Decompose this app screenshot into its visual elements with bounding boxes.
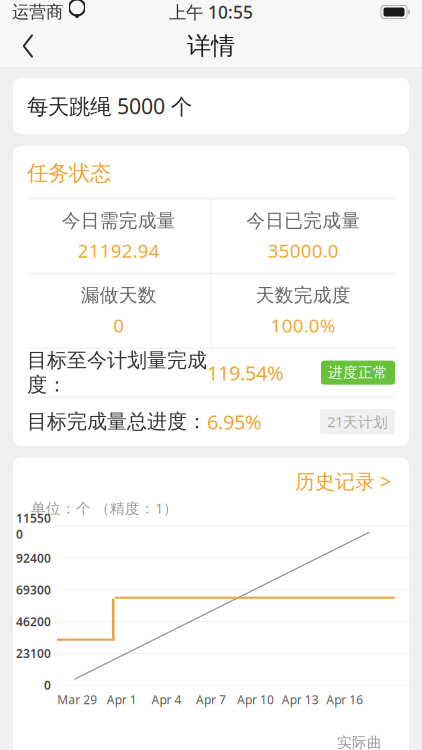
button[interactable]: 返回 xyxy=(6,24,50,68)
staticText: 进度正常 xyxy=(328,364,388,382)
staticText: 天数完成度 xyxy=(256,284,351,307)
staticText: 实际曲线 xyxy=(337,734,382,750)
staticText: 漏做天数 xyxy=(81,284,157,307)
staticText: Apr 16 xyxy=(326,692,363,708)
staticText: Apr 4 xyxy=(151,692,181,708)
staticText: 任务状态 xyxy=(27,160,111,186)
staticText: Apr 13 xyxy=(282,692,319,708)
staticText: 历史记录 > xyxy=(295,468,391,494)
staticText: 单位：个 （精度：1） xyxy=(31,498,178,518)
staticText: 69300 xyxy=(16,582,51,598)
staticText: 46200 xyxy=(16,614,51,629)
staticText: Apr 1 xyxy=(107,692,137,708)
staticText: 今日已完成量 xyxy=(246,209,360,232)
staticText: 每天跳绳 5000 个 xyxy=(27,92,192,120)
staticText: 目标至今计划量完成度： xyxy=(27,348,207,397)
staticText: 目标完成量总进度： xyxy=(27,409,207,434)
staticText: 21192.94 xyxy=(78,238,160,263)
staticText: 21天计划 xyxy=(327,412,388,431)
staticText: 0 xyxy=(44,677,51,693)
staticText: 今日需完成量 xyxy=(62,209,176,232)
staticText: 运营商 xyxy=(12,1,63,23)
staticText: Apr 10 xyxy=(237,692,274,708)
staticText: 115500 xyxy=(16,510,51,542)
staticText: Mar 29 xyxy=(57,692,97,708)
staticText: Apr 7 xyxy=(196,692,226,708)
staticText: 92400 xyxy=(16,550,51,566)
staticText: 119.54% xyxy=(207,359,284,386)
button[interactable]: 历史记录 > xyxy=(291,466,395,496)
staticText: 100.0% xyxy=(271,313,336,338)
staticText: 6.95% xyxy=(207,408,262,435)
staticText: 0 xyxy=(113,313,124,338)
staticText: 35000.0 xyxy=(268,238,339,263)
staticText: 23100 xyxy=(16,645,51,661)
staticText: 详情 xyxy=(187,31,235,61)
staticText: 上午 10:55 xyxy=(169,0,253,23)
